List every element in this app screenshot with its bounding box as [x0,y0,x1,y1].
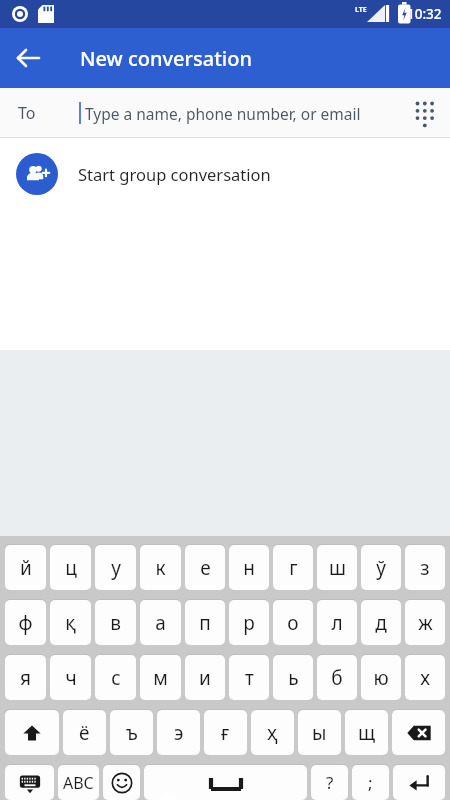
button[interactable]: ь [273,654,313,701]
staticText: ц [65,555,77,581]
staticText: з [420,555,430,581]
button[interactable]: я [5,654,46,701]
staticText: э [174,720,184,746]
staticText: ҳ [267,720,278,746]
staticText: ы [312,720,327,746]
staticText: а [155,610,166,636]
button[interactable]: е [185,544,225,591]
button[interactable]: Shift [5,709,59,756]
staticText: ф [18,610,33,636]
button[interactable]: Space [144,764,307,800]
button[interactable]: ы [298,709,341,756]
button[interactable]: Emoji [103,764,140,800]
staticText: я [20,665,31,691]
button[interactable]: в [95,599,136,646]
staticText: ь [288,665,299,691]
button[interactable]: қ [50,599,91,646]
staticText: б [331,665,343,691]
button[interactable]: ш [317,544,357,591]
staticText: к [155,555,166,581]
button[interactable]: ф [5,599,46,646]
staticText: ч [65,665,77,691]
staticText: е [200,555,211,581]
button[interactable]: To [0,88,450,138]
staticText: д [375,610,387,636]
staticText: и [199,665,211,691]
button[interactable]: Backspace [392,709,445,756]
button[interactable]: ц [50,544,91,591]
button[interactable]: у [95,544,136,591]
staticText: ABC [63,772,94,794]
staticText: у [111,555,121,581]
button[interactable]: ж [405,599,445,646]
button[interactable]: ъ [110,709,153,756]
staticText: қ [65,610,76,636]
button[interactable]: м [140,654,181,701]
staticText: To [18,102,36,124]
button[interactable]: ч [50,654,91,701]
staticText: м [153,665,168,691]
staticText: с [111,665,121,691]
button[interactable]: ABC [58,764,99,800]
button[interactable]: ю [361,654,401,701]
staticText: в [110,610,121,636]
button[interactable]: ҳ [251,709,294,756]
button[interactable]: Dialpad [402,89,450,137]
staticText: ю [373,665,389,691]
button[interactable]: р [229,599,269,646]
staticText: р [243,610,255,636]
staticText: LTE [355,5,367,15]
button[interactable]: т [229,654,269,701]
staticText: ў [376,555,386,581]
staticText: ғ [221,720,230,746]
button[interactable]: а [140,599,181,646]
staticText: New conversation [80,45,252,72]
button[interactable]: с [95,654,136,701]
staticText: Type a name, phone number, or email [85,103,361,124]
button[interactable]: Change keyboard [5,764,54,800]
staticText: п [199,610,211,636]
staticText: о [287,610,299,636]
button[interactable]: п [185,599,225,646]
button[interactable]: ў [361,544,401,591]
staticText: Start group conversation [78,163,271,185]
button[interactable]: щ [345,709,388,756]
button[interactable]: о [273,599,313,646]
staticText: т [245,665,254,691]
button[interactable]: ё [63,709,106,756]
staticText: н [243,555,255,581]
staticText: л [331,610,343,636]
staticText: ; [368,771,373,794]
staticText: ж [418,610,433,636]
staticText: ш [329,555,346,581]
button[interactable]: х [405,654,445,701]
button[interactable]: Back [0,30,56,86]
button[interactable]: Enter [393,764,445,800]
button[interactable]: э [157,709,200,756]
button[interactable]: г [273,544,313,591]
button[interactable]: й [5,544,46,591]
staticText: ? [326,771,334,794]
staticText: 10:32 [407,5,442,23]
button[interactable]: н [229,544,269,591]
button[interactable]: ғ [204,709,247,756]
button[interactable]: и [185,654,225,701]
staticText: ъ [126,720,138,746]
staticText: х [420,665,430,691]
button[interactable]: Start group conversation [0,138,450,209]
button[interactable]: ? [311,764,348,800]
button[interactable]: б [317,654,357,701]
staticText: г [289,555,298,581]
button[interactable]: з [405,544,445,591]
button[interactable]: л [317,599,357,646]
staticText: й [20,555,32,581]
button[interactable]: к [140,544,181,591]
staticText: щ [358,720,376,746]
staticText: ё [79,720,90,746]
button[interactable]: д [361,599,401,646]
button[interactable]: ; [352,764,389,800]
